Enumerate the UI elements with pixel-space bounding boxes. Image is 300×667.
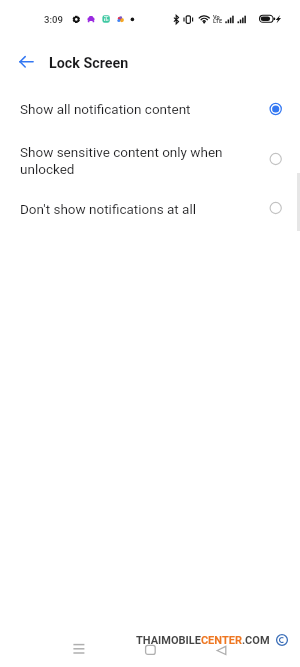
button[interactable]: Back <box>205 635 237 659</box>
button[interactable]: Recent apps <box>63 635 95 659</box>
button[interactable]: Show all notification content <box>0 90 300 128</box>
staticText: Don't show notifications at all <box>20 201 250 217</box>
button[interactable]: Home <box>134 635 166 659</box>
staticText: LTE <box>213 18 223 25</box>
button[interactable]: Don't show notifications at all <box>0 190 300 228</box>
staticText: THAIMOBILECENTER.COM <box>136 634 270 647</box>
button[interactable]: Back <box>8 43 45 80</box>
button[interactable]: Show sensitive content only when unlocke… <box>0 136 300 182</box>
staticText: 3:09 <box>44 14 63 25</box>
staticText: Vo <box>213 14 220 21</box>
staticText: Lock Screen <box>49 55 129 72</box>
staticText: Show sensitive content only when unlocke… <box>20 144 250 178</box>
staticText: Show all notification content <box>20 101 250 117</box>
